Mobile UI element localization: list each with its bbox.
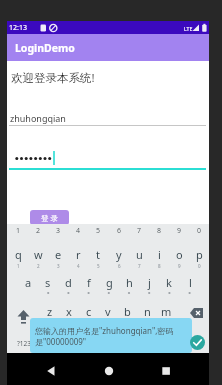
- button[interactable]: v: [98, 301, 118, 321]
- button[interactable]: p: [189, 244, 209, 264]
- staticText: e: [55, 247, 62, 262]
- button[interactable]: k: [159, 272, 179, 292]
- staticText: 3: [57, 263, 60, 269]
- staticText: 7: [138, 263, 141, 269]
- staticText: u: [136, 247, 143, 262]
- button[interactable]: a: [18, 272, 38, 292]
- button[interactable]: ?123: [13, 336, 35, 350]
- staticText: 2: [36, 226, 41, 236]
- button[interactable]: f: [79, 272, 99, 292]
- button[interactable]: 7: [131, 224, 147, 238]
- button[interactable]: j: [139, 272, 159, 292]
- staticText: q: [15, 247, 22, 262]
- staticText: 1: [17, 263, 20, 269]
- button[interactable]: 4: [70, 224, 86, 238]
- button[interactable]: i: [149, 244, 169, 264]
- button[interactable]: r: [68, 244, 88, 264]
- button[interactable]: 9: [171, 224, 187, 238]
- staticText: 欢迎登录本系统!: [11, 70, 95, 85]
- staticText: x: [66, 304, 72, 319]
- staticText: 8: [157, 226, 162, 236]
- staticText: a: [25, 275, 32, 290]
- button[interactable]: 1: [10, 224, 26, 238]
- button[interactable]: s: [38, 272, 58, 292]
- staticText: d: [65, 275, 72, 290]
- button[interactable]: [95, 357, 123, 383]
- staticText: 6: [118, 263, 121, 269]
- staticText: LTE: [184, 25, 193, 32]
- button[interactable]: h: [119, 272, 139, 292]
- staticText: 0: [198, 263, 201, 269]
- button[interactable]: 3: [50, 224, 66, 238]
- button[interactable]: [37, 357, 65, 383]
- staticText: 0: [197, 226, 202, 236]
- staticText: z: [47, 304, 53, 319]
- button[interactable]: zhuhongqian: [10, 111, 130, 124]
- button[interactable]: [15, 307, 32, 326]
- button[interactable]: m: [156, 301, 176, 321]
- button[interactable]: z: [40, 301, 60, 321]
- button[interactable]: [190, 335, 205, 350]
- staticText: 2: [37, 263, 40, 269]
- staticText: 5: [97, 263, 100, 269]
- button[interactable]: 6: [111, 224, 127, 238]
- button[interactable]: c: [79, 301, 99, 321]
- staticText: 4: [76, 226, 81, 236]
- staticText: g: [106, 275, 113, 290]
- staticText: 5: [96, 226, 101, 236]
- staticText: p: [196, 247, 203, 262]
- staticText: r: [76, 247, 81, 262]
- button[interactable]: x: [59, 301, 79, 321]
- button[interactable]: 2: [30, 224, 46, 238]
- staticText: 1: [16, 226, 21, 236]
- staticText: c: [86, 304, 92, 319]
- staticText: ?123: [17, 339, 31, 348]
- staticText: 6: [117, 226, 122, 236]
- staticText: l: [189, 275, 192, 290]
- staticText: n: [144, 304, 151, 319]
- staticText: 登 录: [41, 213, 58, 223]
- button[interactable]: n: [137, 301, 157, 321]
- button[interactable]: l: [180, 272, 200, 292]
- staticText: s: [45, 275, 51, 290]
- staticText: b: [124, 304, 131, 319]
- staticText: v: [105, 304, 111, 319]
- button[interactable]: 8: [151, 224, 167, 238]
- button[interactable]: t: [88, 244, 108, 264]
- staticText: f: [87, 275, 91, 290]
- button[interactable]: 5: [90, 224, 106, 238]
- staticText: k: [166, 275, 172, 290]
- staticText: 3: [56, 226, 61, 236]
- button[interactable]: o: [169, 244, 189, 264]
- staticText: m: [161, 304, 172, 319]
- staticText: w: [34, 247, 43, 262]
- button[interactable]: g: [99, 272, 119, 292]
- staticText: 12:13: [9, 23, 27, 33]
- staticText: LoginDemo: [15, 41, 75, 55]
- staticText: t: [96, 247, 100, 262]
- staticText: j: [148, 275, 151, 290]
- staticText: 9: [178, 263, 181, 269]
- button[interactable]: e: [48, 244, 68, 264]
- button[interactable]: [152, 357, 180, 383]
- staticText: y: [116, 247, 122, 262]
- staticText: o: [176, 247, 183, 262]
- button[interactable]: b: [117, 301, 137, 321]
- staticText: zhuhongqian: [10, 112, 66, 124]
- staticText: 7: [137, 226, 142, 236]
- button[interactable]: [189, 306, 205, 320]
- staticText: 9: [177, 226, 182, 236]
- staticText: 您输入的用户名是"zhuhongqian",密码: [35, 325, 174, 336]
- staticText: 8: [158, 263, 161, 269]
- staticText: 是"00000009": [35, 336, 87, 347]
- button[interactable]: q: [8, 244, 28, 264]
- staticText: h: [126, 275, 133, 290]
- button[interactable]: y: [109, 244, 129, 264]
- button[interactable]: u: [129, 244, 149, 264]
- button[interactable]: w: [28, 244, 48, 264]
- button[interactable]: 0: [191, 224, 207, 238]
- button[interactable]: 登 录: [30, 210, 69, 225]
- staticText: i: [158, 247, 161, 262]
- button[interactable]: [7, 146, 209, 168]
- button[interactable]: d: [58, 272, 78, 292]
